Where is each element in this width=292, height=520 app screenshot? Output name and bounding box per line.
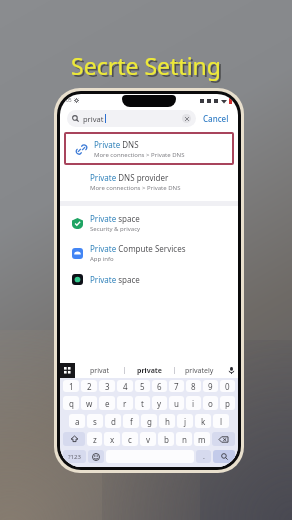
button[interactable]: Cancel [201,111,231,126]
staticText: c [128,434,132,445]
button[interactable]: k [195,414,211,428]
button[interactable]: privately [175,363,224,378]
staticText: ?123 [68,453,81,461]
staticText: 7 [174,381,179,392]
button[interactable]: Private space [60,208,238,238]
staticText: Secrte Setting [71,50,221,81]
staticText: Private space [90,213,140,224]
staticText: Private DNS [94,139,139,150]
button[interactable]: u [169,396,184,410]
button[interactable]: i [186,396,201,410]
staticText: Private DNS provider [90,172,169,183]
button[interactable]: ?123 [63,450,86,463]
button[interactable]: z [87,432,102,446]
staticText: 4 [123,381,128,392]
button[interactable]: Voice input [224,363,238,378]
button[interactable]: 4 [117,380,133,392]
staticText: More connections > Private DNS [90,184,181,192]
button[interactable]: 0 [220,380,235,392]
staticText: x [110,434,115,445]
staticText: h [165,416,170,427]
button[interactable]: privat [67,110,196,127]
staticText: 0 [225,381,230,392]
button[interactable]: . [196,450,211,463]
staticText: y [157,398,162,409]
button[interactable]: t [135,396,150,410]
button[interactable]: d [105,414,121,428]
button[interactable]: b [158,432,174,446]
button[interactable]: y [152,396,167,410]
button[interactable]: 5 [135,380,150,392]
staticText: . [203,452,205,462]
staticText: q [69,398,74,409]
button[interactable]: w [81,396,97,410]
staticText: 9 [208,381,213,392]
button[interactable]: j [177,414,193,428]
button[interactable]: m [194,432,210,446]
staticText: privately [185,366,214,376]
button[interactable]: v [140,432,156,446]
button[interactable]: c [122,432,138,446]
button[interactable]: 2 [81,380,97,392]
button[interactable]: x [104,432,120,446]
staticText: privat [83,114,104,124]
staticText: 3 [105,381,110,392]
button[interactable]: h [159,414,175,428]
button[interactable]: a [69,414,85,428]
staticText: l [220,416,223,427]
staticText: v [146,434,151,445]
button[interactable]: r [117,396,133,410]
staticText: t [141,398,144,409]
button[interactable]: Clear search [182,114,191,123]
button[interactable]: Search [213,450,235,463]
button[interactable]: Private DNS provider [60,167,238,197]
button[interactable]: p [220,396,235,410]
staticText: 8 [191,381,196,392]
staticText: w [86,398,93,409]
staticText: Cancel [203,113,229,124]
button[interactable]: 6 [152,380,167,392]
button[interactable]: Private DNS [64,132,234,165]
button[interactable]: o [203,396,218,410]
button[interactable]: Emoji [88,450,104,463]
staticText: s [93,416,97,427]
staticText: 2 [87,381,92,392]
staticText: Security & privacy [90,225,141,233]
staticText: e [105,398,110,409]
staticText: Private space [90,274,140,285]
button[interactable]: s [87,414,103,428]
staticText: n [182,434,187,445]
staticText: z [93,434,97,445]
staticText: r [123,398,127,409]
button[interactable]: 8 [186,380,201,392]
staticText: 5 [140,381,145,392]
button[interactable]: 1 [63,380,79,392]
button[interactable]: Private Compute Services [60,238,238,268]
staticText: i [192,398,195,409]
button[interactable]: Backspace [212,432,235,446]
button[interactable]: l [213,414,229,428]
button[interactable]: Shift [63,432,85,446]
button[interactable]: Private space [60,268,238,290]
staticText: m [198,434,206,445]
button[interactable]: q [63,396,79,410]
button[interactable]: e [99,396,115,410]
button[interactable]: 3 [99,380,115,392]
staticText: k [201,416,206,427]
button[interactable]: privat [75,363,124,378]
staticText: App info [90,255,114,263]
staticText: f [130,416,133,427]
button[interactable]: n [176,432,192,446]
button[interactable]: private [125,363,174,378]
staticText: Private Compute Services [90,243,186,254]
staticText: u [174,398,179,409]
button[interactable]: g [141,414,157,428]
staticText: d [111,416,116,427]
button[interactable]: Keyboard options [60,363,75,378]
staticText: a [75,416,80,427]
button[interactable]: 9 [203,380,218,392]
staticText: privat [90,366,110,376]
button[interactable]: 7 [169,380,184,392]
button[interactable]: f [123,414,139,428]
